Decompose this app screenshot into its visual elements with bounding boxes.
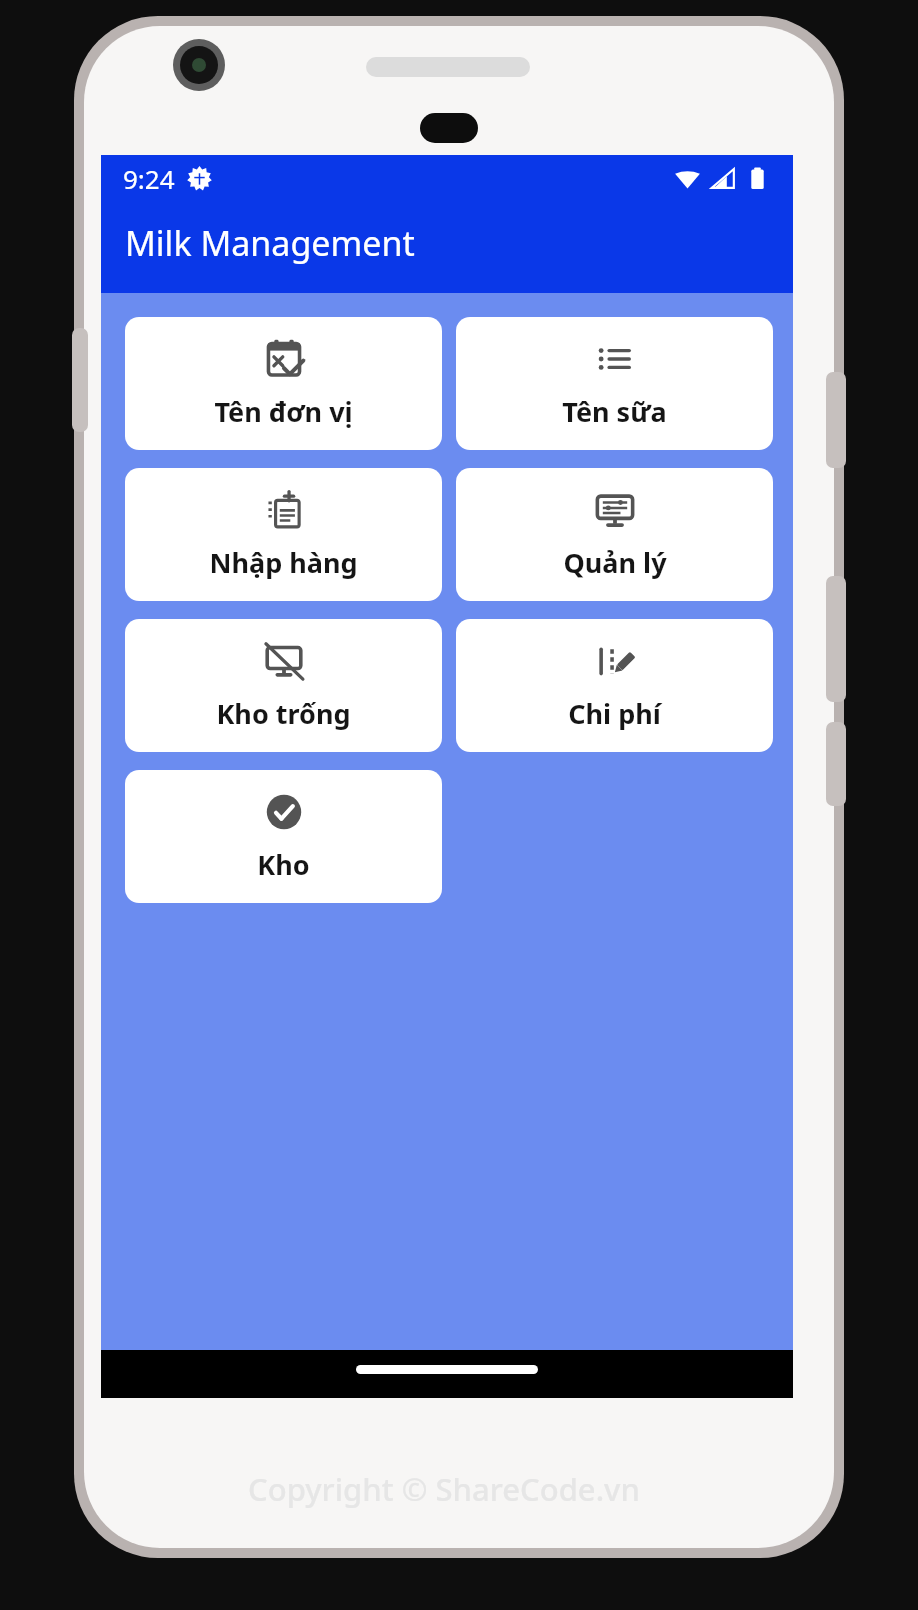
button[interactable]: Kho xyxy=(125,770,442,903)
other: Battery xyxy=(744,165,771,192)
staticText: Quản lý xyxy=(563,544,667,581)
other: Signal xyxy=(709,165,736,192)
staticText: Nhập hàng xyxy=(209,544,358,581)
staticText: Tên sữa xyxy=(562,393,667,430)
staticText: Milk Management xyxy=(125,220,415,266)
staticText: Tên đơn vị xyxy=(214,393,353,430)
staticText: Kho xyxy=(257,846,310,883)
staticText: 9:24 xyxy=(123,161,175,196)
staticText: Copyright © ShareCode.vn xyxy=(248,1468,640,1510)
button[interactable]: Tên đơn vị xyxy=(125,317,442,450)
button[interactable]: Tên sữa xyxy=(456,317,773,450)
button[interactable]: Chi phí xyxy=(456,619,773,752)
staticText: Chi phí xyxy=(568,695,661,732)
button[interactable]: Quản lý xyxy=(456,468,773,601)
button[interactable]: Nhập hàng xyxy=(125,468,442,601)
other: Android system status xyxy=(186,165,213,192)
other: Wi-Fi xyxy=(674,165,701,192)
staticText: Kho trống xyxy=(216,695,351,732)
button[interactable]: Kho trống xyxy=(125,619,442,752)
